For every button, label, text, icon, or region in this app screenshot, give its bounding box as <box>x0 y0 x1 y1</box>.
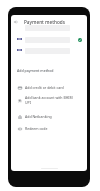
staticText: Add bank account with BHIM <box>25 95 73 100</box>
staticText: Add credit or debit card <box>25 85 64 90</box>
button[interactable]: Add Netbanking <box>11 110 87 122</box>
button[interactable]: Add credit or debit card <box>11 81 87 93</box>
button[interactable] <box>11 34 87 45</box>
button[interactable] <box>11 45 87 56</box>
button[interactable]: Back <box>11 15 21 28</box>
staticText: Redeem code <box>25 126 48 131</box>
staticText: Payment methods <box>24 19 66 25</box>
staticText: Add Netbanking <box>25 114 52 119</box>
button[interactable]: Add bank account with BHIM <box>11 94 87 106</box>
button[interactable]: Redeem code <box>11 122 87 134</box>
staticText: Add payment method <box>17 68 54 73</box>
button[interactable] <box>11 22 87 33</box>
staticText: UPI <box>25 100 31 105</box>
